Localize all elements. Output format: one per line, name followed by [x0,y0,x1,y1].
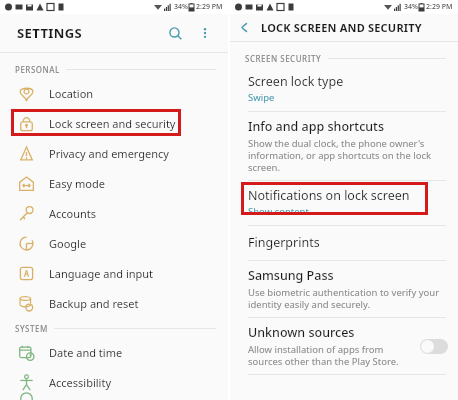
button[interactable]: Easy mode [0,168,228,198]
button[interactable]: Lock screen and security [0,108,228,138]
staticText: Swipe [248,91,275,104]
button[interactable]: Backup and reset [0,288,228,318]
staticText: Notifications on lock screen [248,187,410,204]
staticText: Show the dual clock, the phone owner's i… [248,137,440,174]
staticText: 2:29 PM [426,2,453,12]
staticText: 34% [174,2,188,12]
button[interactable]: More options [192,20,218,46]
button[interactable]: Location [0,78,228,108]
staticText: Easy mode [49,176,105,191]
staticText: Lock screen and security [49,116,176,131]
staticText: Unknown sources [248,324,355,341]
staticText: Location [49,86,94,101]
staticText: Accessibility [49,375,112,390]
staticText: LOCK SCREEN AND SECURITY [261,20,422,35]
staticText: Fingerprints [248,234,320,251]
button[interactable]: Privacy and emergency [0,138,228,168]
staticText: Allow installation of apps from sources … [248,343,414,368]
button[interactable]: Language and input [0,258,228,288]
button[interactable]: Unknown sources [230,318,458,374]
staticText: Language and input [49,266,154,281]
staticText: Accounts [49,206,97,221]
staticText: PERSONAL [15,64,60,75]
staticText: Samsung Pass [248,267,334,284]
button[interactable]: Back [230,14,258,41]
button[interactable]: Accessibility [0,367,228,397]
button[interactable]: Screen lock type [230,67,458,111]
button[interactable] [0,397,228,400]
button[interactable]: Notifications on lock screen [230,181,458,225]
staticText: Screen lock type [248,73,344,90]
button[interactable]: Unknown sources toggle [420,339,448,354]
staticText: Privacy and emergency [49,146,169,161]
staticText: SETTINGS [17,24,83,42]
button[interactable]: Google [0,228,228,258]
button[interactable]: Info and app shortcuts [230,112,458,180]
staticText: SYSTEM [15,323,48,334]
staticText: Date and time [49,345,123,360]
staticText: Use biometric authentication to verify y… [248,286,440,311]
staticText: SCREEN SECURITY [245,53,322,64]
staticText: Google [49,236,87,251]
button[interactable]: Search [162,20,188,46]
button[interactable]: Fingerprints [230,226,458,260]
staticText: 34% [404,2,418,12]
staticText: Backup and reset [49,296,139,311]
staticText: Info and app shortcuts [248,118,384,135]
button[interactable]: Accounts [0,198,228,228]
button[interactable]: Date and time [0,337,228,367]
staticText: Show content [248,205,309,218]
button[interactable]: Samsung Pass [230,261,458,317]
staticText: 2:29 PM [196,2,223,12]
